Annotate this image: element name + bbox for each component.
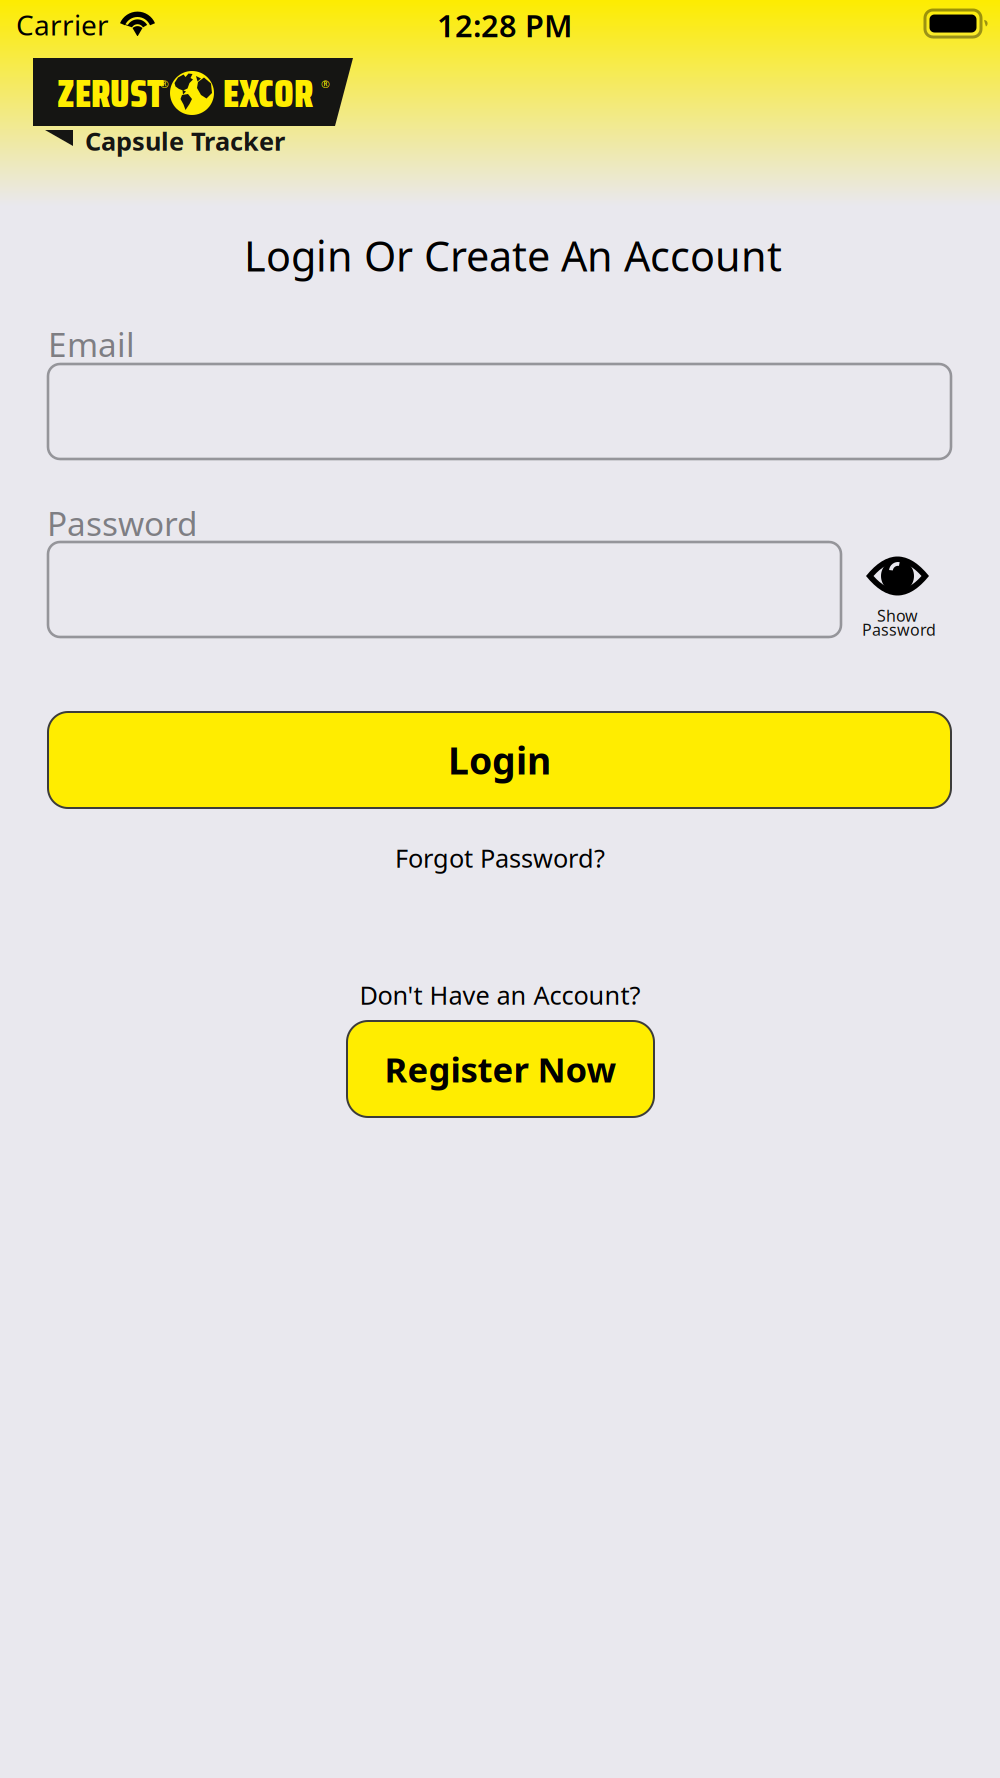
staticText: ®: [160, 77, 169, 91]
staticText: Login: [448, 735, 551, 785]
staticText: EXCOR: [223, 63, 313, 124]
staticText: Register Now: [384, 1046, 616, 1092]
staticText: Carrier: [16, 6, 109, 43]
button[interactable]: Show Password: [858, 545, 938, 645]
staticText: Login Or Create An Account: [244, 228, 782, 283]
button[interactable]: Register Now: [347, 1021, 654, 1117]
staticText: Show: [877, 605, 918, 626]
staticText: Password: [862, 619, 936, 640]
staticText: ®: [321, 77, 330, 91]
staticText: Don't Have an Account?: [359, 978, 640, 1012]
staticText: 12:28 PM: [437, 5, 572, 46]
button[interactable]: Login: [48, 712, 951, 808]
staticText: Forgot Password?: [395, 841, 605, 875]
staticText: Capsule Tracker: [85, 124, 285, 158]
staticText: ZERUST: [57, 63, 164, 124]
staticText: Password: [47, 501, 198, 545]
button[interactable]: Forgot Password?: [350, 836, 650, 880]
staticText: Email: [48, 322, 135, 366]
